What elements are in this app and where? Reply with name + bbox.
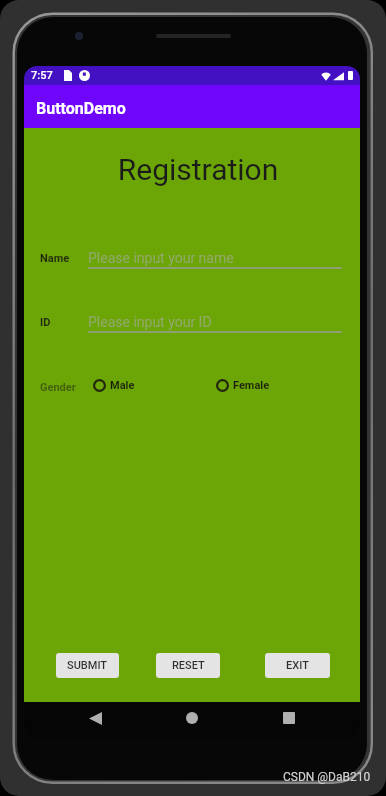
- button[interactable]: Recent apps: [265, 694, 313, 742]
- staticText: Gender: [40, 381, 76, 394]
- button[interactable]: Back: [71, 694, 119, 742]
- button[interactable]: Home: [168, 694, 216, 742]
- staticText: 7:57: [31, 69, 53, 82]
- staticText: Name: [40, 252, 70, 265]
- staticText: Please input your name: [88, 250, 234, 266]
- staticText: Female: [233, 379, 270, 392]
- button[interactable]: SUBMIT: [56, 653, 119, 678]
- button[interactable]: EXIT: [265, 653, 330, 678]
- staticText: ID: [40, 316, 51, 329]
- staticText: Male: [110, 379, 135, 392]
- staticText: Registration: [30, 152, 360, 187]
- staticText: Please input your ID: [88, 314, 212, 330]
- staticText: EXIT: [286, 659, 309, 672]
- button[interactable]: Female: [216, 379, 270, 392]
- button[interactable]: Male: [93, 379, 135, 392]
- staticText: RESET: [172, 659, 205, 672]
- button[interactable]: RESET: [156, 653, 220, 678]
- staticText: ButtonDemo: [36, 99, 126, 118]
- staticText: CSDN @DaB210: [283, 770, 371, 784]
- staticText: SUBMIT: [67, 659, 108, 672]
